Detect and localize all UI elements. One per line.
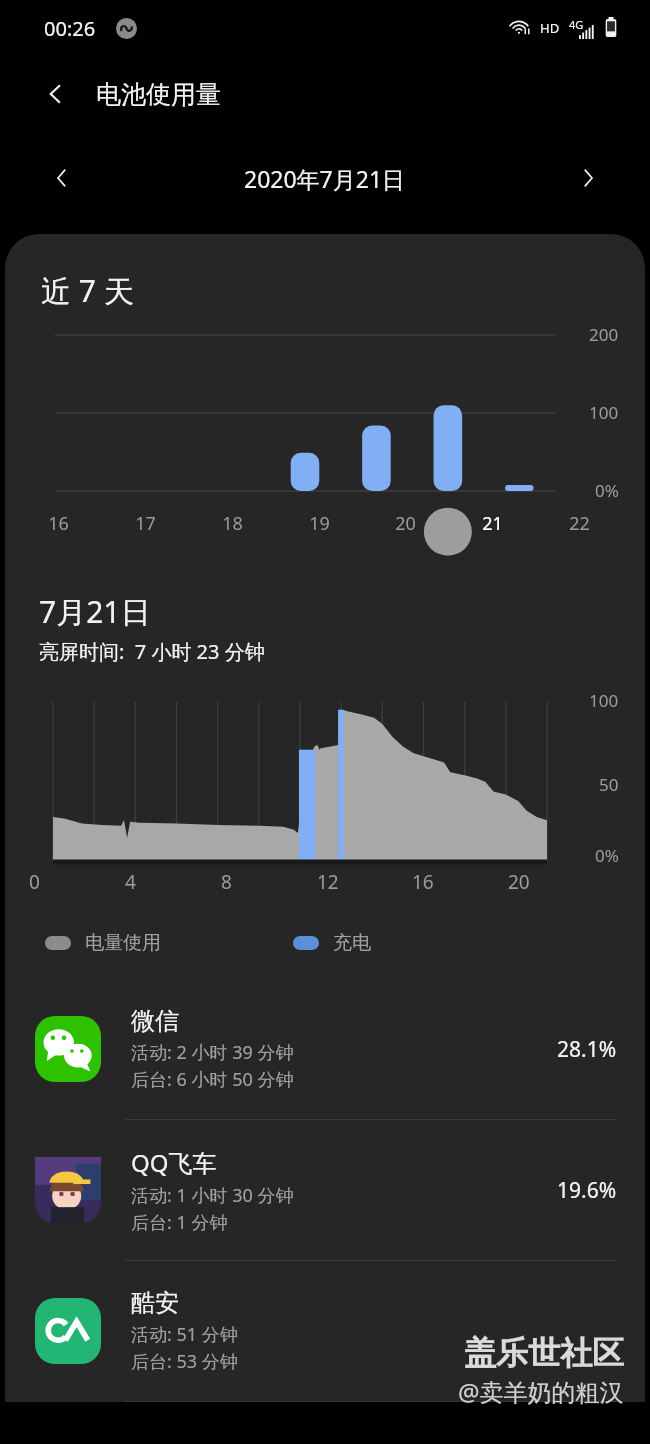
staticText: 后台: 6 小时 50 分钟 (131, 1067, 294, 1092)
staticText: 微信 (131, 1006, 179, 1036)
button[interactable]: Back (34, 72, 78, 116)
staticText: 19 (309, 511, 330, 536)
staticText: 100 (589, 401, 619, 424)
staticText: 28.1% (557, 1035, 617, 1064)
staticText: 酷安 (131, 1288, 179, 1318)
staticText: 19.6% (557, 1176, 617, 1205)
button[interactable]: Next day (562, 152, 614, 204)
staticText: 2020年7月21日 (244, 163, 406, 194)
button[interactable]: Previous day (36, 152, 88, 204)
staticText: 18 (222, 511, 243, 536)
button[interactable]: 酷安 (5, 1261, 645, 1401)
staticText: 12 (317, 869, 339, 895)
staticText: 200 (589, 323, 619, 346)
staticText: QQ飞车 (131, 1146, 217, 1179)
staticText: 近 7 天 (41, 270, 134, 311)
staticText: 电池使用量 (96, 79, 221, 110)
staticText: 活动: 1 小时 30 分钟 (131, 1183, 294, 1208)
button[interactable]: QQ飞车 (5, 1120, 645, 1260)
staticText: HD (540, 19, 560, 37)
staticText: 后台: 53 分钟 (131, 1349, 238, 1374)
staticText: 16 (48, 511, 69, 536)
staticText: 0 (29, 869, 40, 895)
staticText: 后台: 1 分钟 (131, 1210, 228, 1235)
staticText: 21 (482, 511, 503, 536)
staticText: 4G (569, 17, 584, 32)
staticText: @卖羊奶的粗汉 (458, 1375, 624, 1408)
button[interactable]: 微信 (5, 979, 645, 1119)
staticText: 22 (569, 511, 590, 536)
staticText: 活动: 51 分钟 (131, 1322, 238, 1347)
staticText: 20 (508, 869, 530, 895)
staticText: 8 (221, 869, 232, 895)
staticText: 0% (595, 479, 619, 502)
staticText: 100 (589, 689, 619, 712)
staticText: 0% (595, 844, 619, 867)
staticText: 亮屏时间: 7 小时 23 分钟 (39, 638, 265, 665)
staticText: 00:26 (44, 15, 96, 42)
staticText: 17 (135, 511, 156, 536)
staticText: 电量使用 (85, 931, 161, 955)
staticText: 充电 (333, 931, 371, 955)
staticText: 16 (412, 869, 434, 895)
staticText: 4 (125, 869, 136, 895)
staticText: 50 (599, 773, 619, 796)
staticText: 7月21日 (39, 591, 151, 632)
staticText: 20 (395, 511, 416, 536)
staticText: 活动: 2 小时 39 分钟 (131, 1040, 294, 1065)
staticText: 盖乐世社区 (464, 1333, 624, 1373)
